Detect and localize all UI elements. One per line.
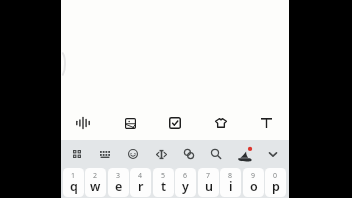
staticText: o bbox=[250, 178, 258, 195]
staticText: 6 bbox=[183, 171, 188, 181]
button[interactable]: 0 bbox=[265, 168, 286, 197]
staticText: i bbox=[229, 178, 233, 195]
button[interactable]: Hide keyboard bbox=[261, 142, 285, 166]
button[interactable]: Add sticker bbox=[207, 109, 235, 137]
staticText: t bbox=[161, 178, 167, 195]
button[interactable]: 7 bbox=[198, 168, 219, 197]
button[interactable]: Apps bbox=[65, 142, 89, 166]
staticText: 0 bbox=[273, 171, 278, 181]
button[interactable]: 5 bbox=[153, 168, 174, 197]
button[interactable]: Text format bbox=[252, 109, 280, 137]
button[interactable]: Record audio bbox=[69, 109, 97, 137]
staticText: e bbox=[115, 178, 123, 195]
staticText: r bbox=[138, 178, 144, 195]
button[interactable]: Text editing bbox=[149, 142, 173, 166]
staticText: 7 bbox=[206, 171, 211, 181]
button[interactable]: Add image bbox=[116, 109, 144, 137]
button[interactable]: 1 bbox=[63, 168, 84, 197]
staticText: p bbox=[272, 178, 280, 195]
button[interactable]: Keyboard layouts bbox=[93, 142, 117, 166]
staticText: 3 bbox=[116, 171, 121, 181]
button[interactable]: 8 bbox=[220, 168, 241, 197]
staticText: y bbox=[182, 178, 189, 195]
staticText: 8 bbox=[228, 171, 233, 181]
staticText: u bbox=[205, 178, 213, 195]
button[interactable]: Emoji bbox=[121, 142, 145, 166]
button[interactable]: Add checklist bbox=[161, 109, 189, 137]
staticText: 5 bbox=[161, 171, 166, 181]
staticText: q bbox=[70, 178, 78, 195]
button[interactable]: 4 bbox=[130, 168, 151, 197]
button[interactable]: 2 bbox=[85, 168, 106, 197]
button[interactable]: Assistant bbox=[233, 142, 257, 166]
staticText: 1 bbox=[71, 171, 76, 181]
staticText: 9 bbox=[251, 171, 256, 181]
staticText: 2 bbox=[93, 171, 98, 181]
button[interactable]: Search bbox=[204, 142, 228, 166]
button[interactable]: 6 bbox=[175, 168, 196, 197]
staticText: w bbox=[90, 178, 101, 195]
button[interactable]: 9 bbox=[243, 168, 264, 197]
button[interactable]: 3 bbox=[108, 168, 129, 197]
button[interactable]: Clipboard bbox=[177, 142, 201, 166]
staticText: 4 bbox=[138, 171, 143, 181]
